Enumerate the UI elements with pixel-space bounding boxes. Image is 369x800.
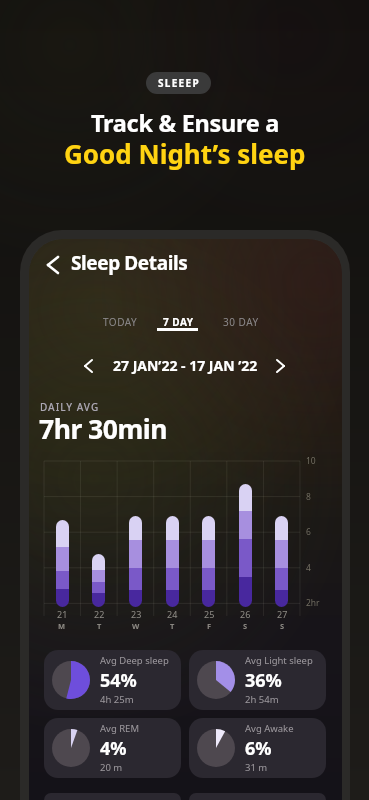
staticText: 27: [277, 608, 288, 620]
staticText: 22: [94, 608, 105, 620]
button[interactable]: Sleep Details: [71, 250, 188, 276]
button[interactable]: [277, 360, 284, 372]
staticText: 26: [240, 608, 251, 620]
button[interactable]: 30 DAY: [217, 313, 265, 331]
staticText: 54%: [100, 668, 137, 693]
staticText: Avg Deep sleep: [100, 654, 169, 667]
staticText: Avg Awake: [245, 722, 294, 735]
staticText: Track & Ensure a: [91, 107, 279, 139]
staticText: 25: [204, 608, 215, 620]
staticText: F: [207, 621, 212, 631]
button[interactable]: Avg Awake: [189, 718, 326, 778]
button[interactable]: Avg REM: [44, 718, 181, 778]
staticText: T: [170, 621, 175, 631]
staticText: 2hr: [306, 597, 320, 609]
staticText: 4: [306, 562, 311, 574]
staticText: SLEEEP: [158, 76, 200, 90]
staticText: 6: [306, 526, 311, 538]
staticText: S: [280, 621, 285, 631]
staticText: TODAY: [103, 315, 138, 329]
staticText: 7hr 30min: [39, 411, 167, 447]
staticText: Avg Light sleep: [245, 654, 313, 667]
button[interactable]: Avg Deep sleep: [44, 650, 181, 710]
staticText: 2h 54m: [245, 693, 279, 706]
staticText: 10: [306, 455, 316, 467]
staticText: DAILY AVG: [40, 400, 100, 414]
button[interactable]: SLEEEP: [146, 72, 211, 94]
staticText: 20 m: [100, 761, 123, 774]
button[interactable]: TODAY: [96, 313, 144, 331]
staticText: 21: [57, 608, 68, 620]
staticText: S: [243, 621, 248, 631]
button[interactable]: 27 JAN’22 - 17 JAN ’22: [29, 356, 342, 375]
staticText: 36%: [245, 668, 282, 693]
staticText: 23: [131, 608, 142, 620]
button[interactable]: Avg Light sleep: [189, 650, 326, 710]
staticText: Avg REM: [100, 722, 140, 735]
staticText: 6%: [245, 736, 272, 761]
button[interactable]: 7 DAY: [154, 313, 202, 331]
button[interactable]: [48, 257, 58, 273]
staticText: 4h 25m: [100, 693, 134, 706]
staticText: 27 JAN’22 - 17 JAN ’22: [113, 356, 258, 375]
staticText: 8: [306, 491, 311, 503]
staticText: T: [97, 621, 102, 631]
button[interactable]: [85, 360, 92, 372]
staticText: 30 DAY: [223, 315, 259, 329]
staticText: 24: [167, 608, 178, 620]
staticText: M: [58, 621, 66, 631]
staticText: 4%: [100, 736, 127, 761]
staticText: W: [132, 621, 140, 631]
staticText: 31 m: [245, 761, 268, 774]
staticText: Good Night’s sleep: [64, 136, 306, 171]
staticText: 7 DAY: [163, 315, 194, 329]
